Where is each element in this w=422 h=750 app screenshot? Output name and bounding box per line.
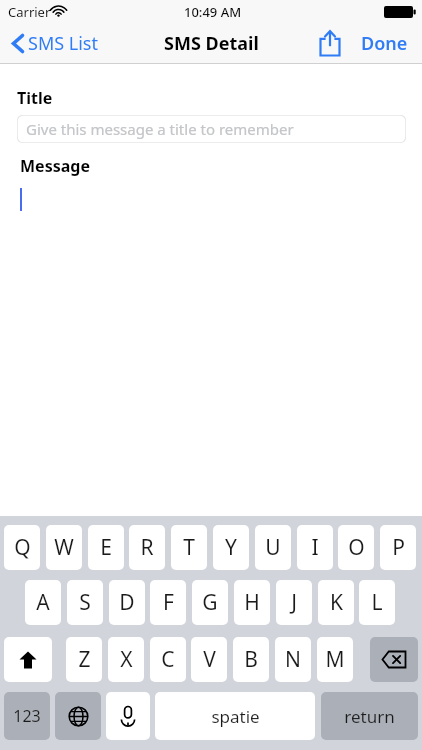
staticText: Carrier (8, 3, 51, 21)
button[interactable]: V (191, 637, 227, 682)
button[interactable]: N (275, 637, 311, 682)
staticText: A (36, 588, 50, 617)
button[interactable]: U (255, 525, 291, 570)
button[interactable]: I (297, 525, 333, 570)
button[interactable]: R (129, 525, 165, 570)
staticText: SMS List (28, 31, 98, 56)
button[interactable]: W (46, 525, 82, 570)
button[interactable]: X (108, 637, 144, 682)
button[interactable]: E (88, 525, 124, 570)
button[interactable]: J (276, 580, 312, 625)
button[interactable]: spatie (155, 692, 315, 740)
staticText: Give this message a title to remember (26, 119, 294, 139)
staticText: L (371, 588, 383, 617)
staticText: P (392, 533, 405, 562)
staticText: spatie (211, 705, 260, 728)
button[interactable]: B (233, 637, 269, 682)
staticText: Z (78, 645, 91, 674)
staticText: SMS Detail (164, 31, 259, 56)
button[interactable]: K (318, 580, 354, 625)
button[interactable]: 123 (4, 692, 50, 740)
button[interactable]: Dictate (106, 692, 150, 740)
staticText: C (161, 645, 175, 674)
staticText: S (79, 588, 91, 617)
button[interactable]: Share (310, 22, 350, 64)
staticText: V (203, 645, 216, 674)
staticText: O (348, 533, 365, 562)
staticText: R (140, 533, 154, 562)
staticText: G (202, 588, 218, 617)
staticText: Y (225, 533, 237, 562)
button[interactable]: P (380, 525, 416, 570)
button[interactable]: O (338, 525, 374, 570)
button[interactable]: Next keyboard (55, 692, 101, 740)
staticText: M (325, 645, 345, 674)
staticText: K (330, 588, 343, 617)
staticText: Done (361, 31, 408, 56)
button[interactable]: M (317, 637, 353, 682)
staticText: 10:49 AM (184, 3, 242, 21)
button[interactable]: Shift (4, 637, 52, 682)
button[interactable]: Z (66, 637, 102, 682)
button[interactable]: Backspace (370, 637, 418, 682)
button[interactable]: Done (350, 22, 418, 64)
staticText: X (120, 645, 133, 674)
button[interactable]: Give this message a title to remember (17, 115, 406, 143)
button[interactable]: G (192, 580, 228, 625)
staticText: W (54, 533, 74, 562)
staticText: Message (20, 155, 90, 177)
staticText: Title (17, 87, 53, 109)
button[interactable]: Q (4, 525, 40, 570)
button[interactable]: L (359, 580, 395, 625)
staticText: 123 (13, 705, 41, 727)
staticText: return (344, 705, 395, 728)
staticText: E (100, 533, 112, 562)
staticText: D (119, 588, 135, 617)
button[interactable]: SMS List (12, 22, 98, 64)
button[interactable]: A (25, 580, 61, 625)
button[interactable]: S (67, 580, 103, 625)
button[interactable]: Y (213, 525, 249, 570)
staticText: B (244, 645, 258, 674)
staticText: T (183, 533, 195, 562)
button[interactable]: D (109, 580, 145, 625)
staticText: H (244, 588, 260, 617)
staticText: J (291, 588, 297, 617)
staticText: U (265, 533, 281, 562)
button[interactable]: return (321, 692, 418, 740)
button[interactable] (0, 180, 422, 510)
staticText: F (163, 588, 174, 617)
button[interactable]: C (150, 637, 186, 682)
button[interactable]: F (150, 580, 186, 625)
staticText: Q (14, 533, 31, 562)
button[interactable]: T (171, 525, 207, 570)
staticText: N (285, 645, 301, 674)
button[interactable]: H (234, 580, 270, 625)
staticText: I (311, 533, 319, 562)
